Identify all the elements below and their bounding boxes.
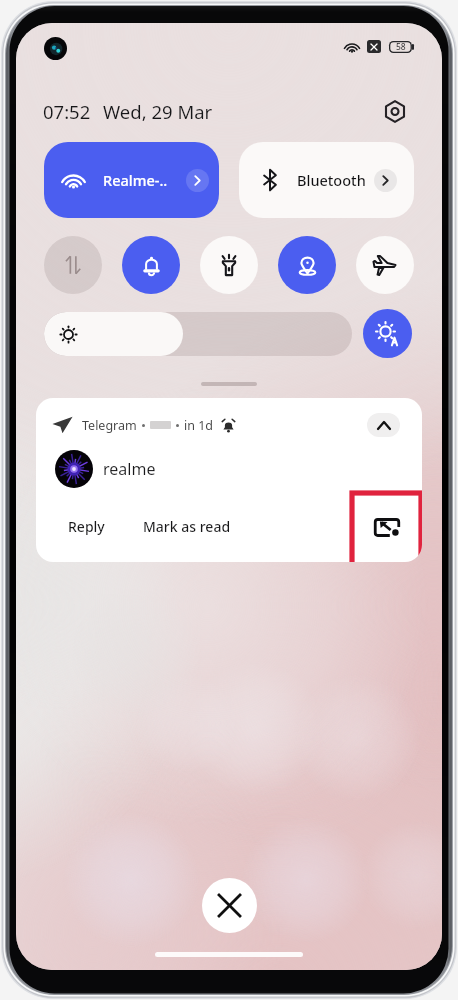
staticText: Wed, 29 Mar [103, 99, 213, 124]
button[interactable]: Settings [378, 94, 412, 128]
staticText: Bluetooth [297, 170, 366, 190]
button[interactable]: Airplane mode [356, 236, 414, 294]
staticText: in 1d [184, 417, 214, 434]
button[interactable]: Sound [122, 236, 180, 294]
staticText: Telegram [82, 417, 137, 434]
staticText: realme [103, 458, 156, 480]
staticText: Realme-.. [103, 170, 168, 190]
button[interactable]: Bubble [352, 493, 421, 562]
button[interactable]: Auto brightness [363, 309, 412, 358]
staticText: Mark as read [143, 517, 231, 536]
button[interactable]: Location [278, 236, 336, 294]
button[interactable]: Close [202, 878, 257, 933]
button[interactable]: Bluetooth [239, 142, 414, 218]
button[interactable]: Collapse [367, 413, 400, 437]
button[interactable]: Flashlight [200, 236, 258, 294]
button[interactable]: Realme-.. [44, 142, 219, 218]
button[interactable]: Telegram [36, 398, 422, 562]
staticText: Reply [68, 517, 105, 536]
button[interactable]: Reply [63, 509, 110, 544]
button[interactable]: Mobile data [44, 236, 102, 294]
button[interactable] [44, 312, 352, 356]
staticText: 58 [396, 41, 406, 53]
button[interactable]: Mark as read [138, 509, 236, 544]
staticText: 07:52 [43, 99, 91, 124]
